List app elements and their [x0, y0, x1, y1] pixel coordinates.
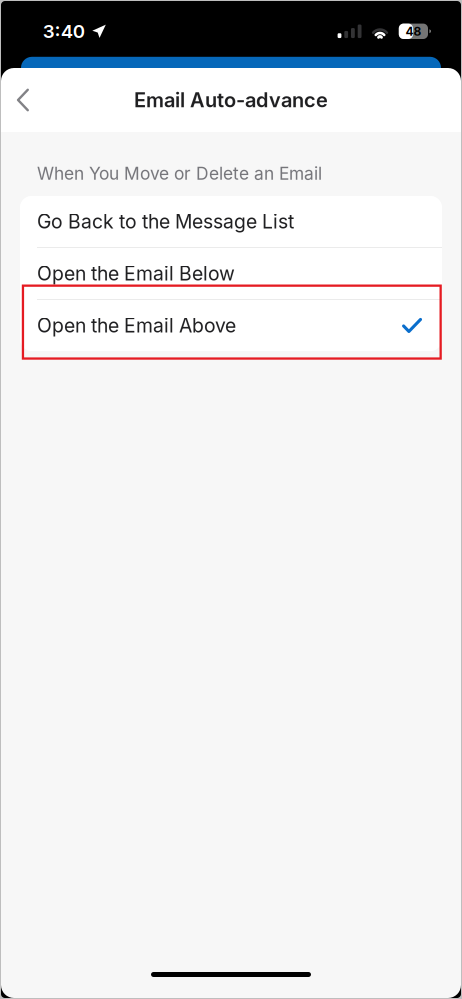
button[interactable]: Open the Email Above	[20, 300, 442, 351]
button[interactable]: Go Back to the Message List	[20, 196, 442, 247]
staticText: 3:40	[43, 20, 85, 43]
staticText: Open the Email Below	[37, 262, 235, 285]
staticText: 48	[405, 24, 421, 38]
staticText: Open the Email Above	[37, 314, 236, 337]
staticText: When You Move or Delete an Email	[37, 163, 322, 184]
staticText: Email Auto-advance	[134, 88, 328, 112]
button[interactable]: Open the Email Below	[20, 248, 442, 299]
button[interactable]: Back	[1, 76, 45, 124]
staticText: Go Back to the Message List	[37, 210, 294, 233]
